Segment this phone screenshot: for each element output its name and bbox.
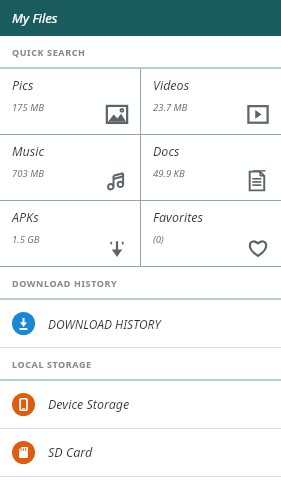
button[interactable]: DOWNLOAD HISTORY	[0, 300, 281, 347]
button[interactable]: Favorites	[141, 201, 281, 266]
staticText: DOWNLOAD HISTORY	[12, 277, 118, 289]
staticText: 49.9 KB	[153, 167, 185, 180]
button[interactable]: Device Storage	[0, 381, 281, 428]
staticText: Docs	[153, 143, 180, 160]
button[interactable]: Videos	[141, 69, 281, 134]
button[interactable]: Docs	[141, 135, 281, 200]
staticText: SD Card	[48, 444, 93, 461]
staticText: 1.5 GB	[12, 233, 40, 246]
staticText: LOCAL STORAGE	[12, 358, 92, 370]
staticText: My Files	[12, 9, 58, 27]
staticText: APKs	[12, 209, 39, 226]
staticText: DOWNLOAD HISTORY	[48, 316, 161, 332]
staticText: Videos	[153, 77, 190, 94]
button[interactable]: APKs	[0, 201, 140, 266]
staticText: Pics	[12, 77, 34, 94]
staticText: 703 MB	[12, 167, 44, 180]
staticText: Device Storage	[48, 396, 130, 413]
staticText: 175 MB	[12, 101, 44, 114]
staticText: Music	[12, 143, 45, 160]
button[interactable]: SD Card	[0, 429, 281, 476]
button[interactable]: Pics	[0, 69, 140, 134]
button[interactable]: Music	[0, 135, 140, 200]
staticText: (0)	[153, 233, 164, 246]
staticText: QUICK SEARCH	[12, 46, 86, 58]
staticText: 23.7 MB	[153, 101, 188, 114]
staticText: Favorites	[153, 209, 203, 226]
